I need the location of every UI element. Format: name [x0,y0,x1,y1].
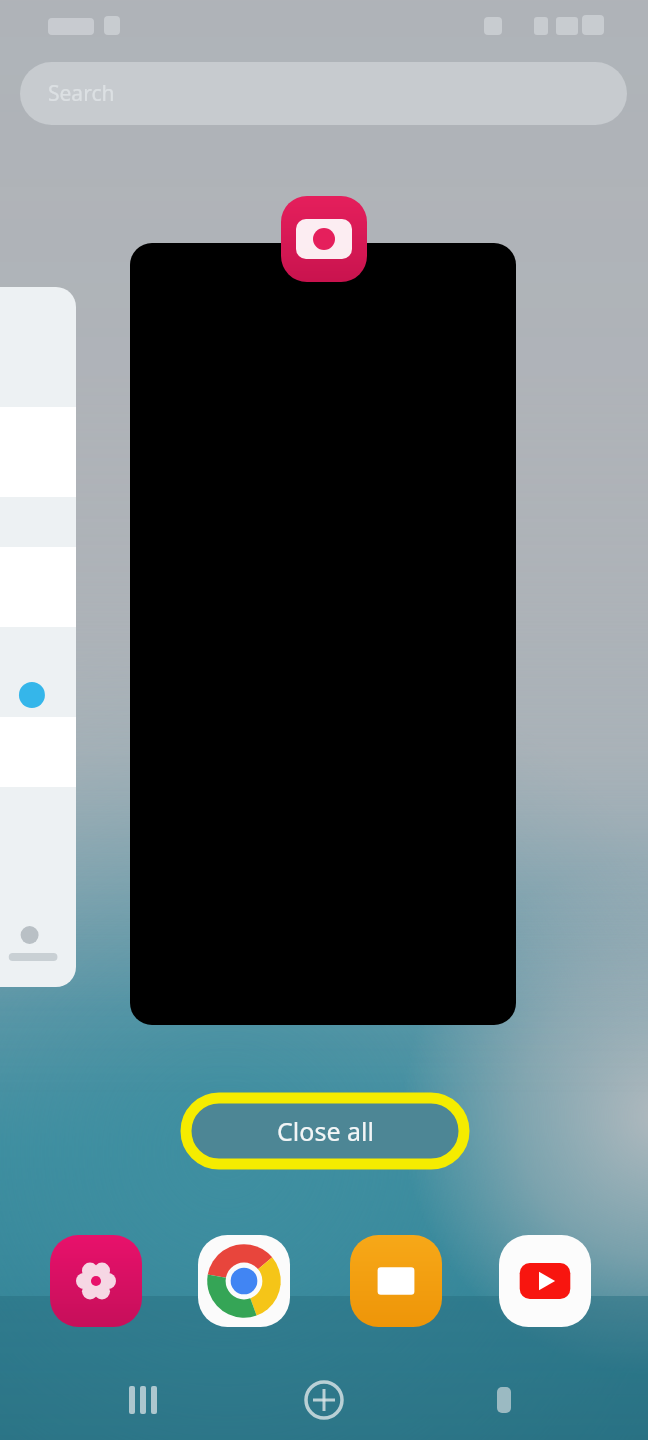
button[interactable]: Settings [50,1235,142,1327]
button[interactable]: YouTube [499,1235,591,1327]
button[interactable]: Messages [350,1235,442,1327]
staticText: Close all [277,1114,374,1148]
button[interactable] [130,243,516,1025]
button[interactable]: Search [20,62,627,125]
button[interactable] [0,287,76,987]
button[interactable]: Back [475,1370,535,1430]
staticText: Search [48,79,115,108]
button[interactable]: Home [294,1370,354,1430]
button[interactable]: Chrome [198,1235,290,1327]
button[interactable]: Close all [178,1090,472,1172]
button[interactable]: App icon [281,196,367,282]
button[interactable]: Recents [113,1370,173,1430]
